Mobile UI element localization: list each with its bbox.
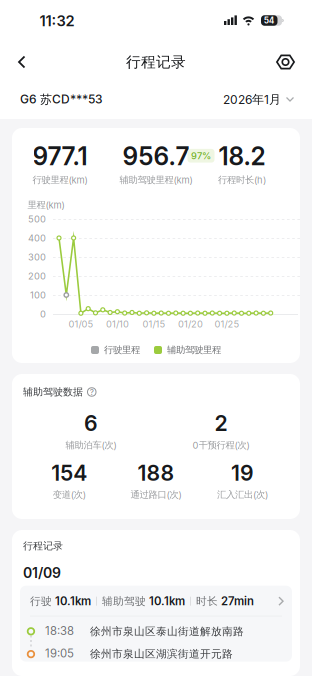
staticText: 956.7 [122, 142, 189, 170]
staticText: 100 [30, 290, 46, 300]
staticText: 27min [218, 595, 254, 608]
staticText: 行驶 [30, 595, 52, 608]
staticText: 辅助驾驶里程 [167, 344, 221, 356]
staticText: 0干预行程(次) [192, 439, 249, 451]
staticText: 变道(次) [53, 489, 86, 500]
staticText: 行程时长(h) [218, 174, 266, 186]
staticText: 辅助驾驶 [102, 595, 146, 608]
staticText: 01/25 [214, 319, 239, 329]
staticText: 01/10 [106, 319, 129, 329]
staticText: 10.1km [52, 595, 91, 608]
staticText: 01/05 [68, 319, 93, 329]
staticText: G6 苏CD***53 [20, 92, 103, 107]
staticText: 辅助驾驶数据 [23, 386, 83, 398]
staticText: 01/09 [23, 565, 61, 581]
staticText: 400 [28, 233, 46, 243]
staticText: 辅助泊车(次) [65, 439, 116, 451]
button[interactable]: 行驶 [20, 586, 292, 616]
staticText: 01/15 [142, 319, 165, 329]
staticText: 行程记录 [23, 540, 63, 552]
staticText: 行驶里程 [104, 344, 140, 356]
staticText: 徐州市泉山区泰山街道解放南路 [90, 625, 244, 638]
staticText: 19:05 [45, 647, 74, 660]
staticText: 977.1 [32, 142, 87, 170]
staticText: 18.2 [218, 142, 265, 170]
button[interactable]: 返回 [0, 51, 38, 73]
staticText: 01/20 [178, 319, 203, 329]
staticText: 2026年1月 [223, 92, 281, 107]
staticText: 行驶里程(km) [32, 174, 87, 186]
button[interactable]: 设置 [275, 51, 296, 72]
staticText: 10.1km [146, 595, 185, 608]
staticText: 时长 [196, 595, 218, 608]
staticText: 154 [51, 461, 87, 485]
staticText: 通过路口(次) [130, 489, 181, 500]
button[interactable]: 辅助驾驶数据说明 [87, 387, 96, 397]
staticText: 11:32 [39, 13, 74, 29]
staticText: 里程(km) [27, 199, 64, 211]
button[interactable]: 2026年1月 [223, 92, 312, 107]
staticText: 徐州市泉山区湖滨街道开元路 [90, 647, 233, 660]
staticText: 6 [84, 411, 98, 435]
staticText: 汇入汇出(次) [217, 489, 268, 500]
staticText: 200 [28, 271, 46, 281]
staticText: 行程记录 [126, 53, 186, 71]
staticText: 97% [191, 150, 211, 161]
staticText: 19 [231, 461, 254, 485]
staticText: 辅助驾驶里程(km) [119, 174, 192, 186]
staticText: 18:38 [45, 624, 74, 637]
staticText: ? [90, 387, 94, 397]
staticText: 188 [137, 461, 174, 485]
button[interactable]: G6 苏CD***53 [0, 92, 103, 107]
staticText: 2 [214, 411, 227, 435]
staticText: 54 [264, 16, 275, 25]
staticText: 0 [40, 309, 46, 319]
staticText: 300 [28, 252, 46, 262]
staticText: 500 [28, 214, 46, 224]
